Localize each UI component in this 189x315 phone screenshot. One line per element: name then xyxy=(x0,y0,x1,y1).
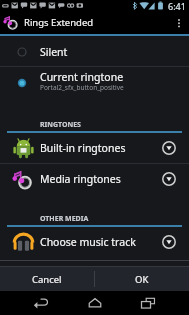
button[interactable]: Current ringtone xyxy=(0,67,189,108)
button[interactable]: Back xyxy=(28,291,54,315)
staticText: Cancel xyxy=(32,273,62,286)
button[interactable]: Expand xyxy=(157,230,181,254)
staticText: Portal2_sfx_button_positive xyxy=(40,83,124,92)
button[interactable]: Choose music track xyxy=(0,227,189,257)
staticText: OK xyxy=(135,273,149,286)
button[interactable]: More options xyxy=(172,11,186,34)
staticText: Choose music track xyxy=(40,235,136,249)
staticText: Current ringtone xyxy=(40,70,124,84)
button[interactable]: Recent apps xyxy=(135,291,161,315)
button[interactable]: Cancel xyxy=(0,267,94,291)
button[interactable]: Expand xyxy=(157,167,181,191)
button[interactable]: OK xyxy=(95,267,189,291)
staticText: RINGTONES xyxy=(40,120,81,130)
staticText: 6:41 xyxy=(168,0,186,11)
staticText: Built-in ringtones xyxy=(40,141,126,155)
staticText: Silent xyxy=(40,45,68,59)
button[interactable]: Expand xyxy=(157,136,181,160)
staticText: Media ringtones xyxy=(40,172,121,186)
staticText: OTHER MEDIA xyxy=(40,214,89,224)
button[interactable]: Home xyxy=(82,291,108,315)
staticText: Rings Extended xyxy=(24,16,94,29)
button[interactable]: Silent xyxy=(0,36,189,66)
button[interactable]: Built-in ringtones xyxy=(0,133,189,163)
button[interactable]: Media ringtones xyxy=(0,164,189,194)
